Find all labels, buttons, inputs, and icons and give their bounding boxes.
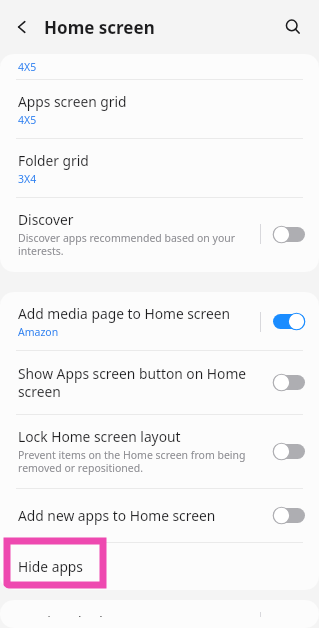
- button[interactable]: [271, 222, 307, 247]
- button[interactable]: Add new apps to Home screen: [0, 489, 319, 542]
- staticText: Home screen: [44, 16, 155, 39]
- button[interactable]: Lock Home screen layout: [0, 415, 319, 488]
- staticText: Lock Home screen layout: [18, 427, 181, 446]
- button[interactable]: Search: [278, 12, 308, 42]
- button[interactable]: [271, 309, 307, 334]
- staticText: Apps screen grid: [18, 92, 127, 111]
- staticText: App icon badges: [18, 612, 126, 617]
- staticText: Discover apps recommended based on your …: [18, 231, 236, 258]
- button[interactable]: 4X5: [0, 54, 319, 79]
- staticText: Show Apps screen button on Home screen: [18, 364, 247, 401]
- button[interactable]: Apps screen grid: [0, 80, 319, 138]
- button[interactable]: [271, 439, 307, 464]
- staticText: Hide apps: [18, 557, 83, 576]
- button[interactable]: [271, 370, 307, 395]
- staticText: Amazon: [18, 325, 59, 339]
- staticText: 4X5: [18, 60, 37, 74]
- button[interactable]: [271, 503, 307, 528]
- staticText: Add media page to Home screen: [18, 304, 231, 323]
- button[interactable]: Back: [8, 13, 36, 41]
- staticText: 3X4: [18, 172, 37, 186]
- staticText: Folder grid: [18, 151, 89, 170]
- staticText: Discover: [18, 210, 74, 229]
- staticText: Add new apps to Home screen: [18, 506, 216, 525]
- button[interactable]: Add media page to Home screen: [0, 292, 319, 350]
- button[interactable]: Folder grid: [0, 139, 319, 197]
- staticText: 4X5: [18, 113, 37, 127]
- staticText: Prevent items on the Home screen from be…: [18, 448, 246, 475]
- button[interactable]: Show Apps screen button on Home screen: [0, 351, 319, 414]
- button[interactable]: Hide apps: [0, 543, 319, 590]
- button[interactable]: Discover: [0, 198, 319, 272]
